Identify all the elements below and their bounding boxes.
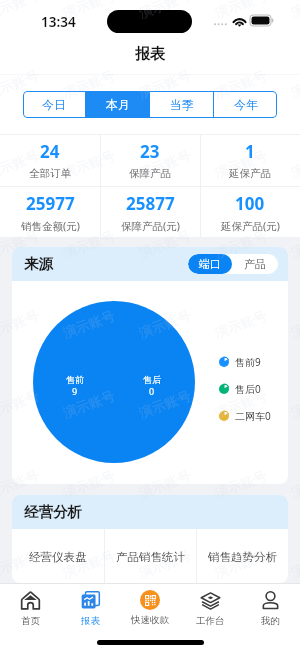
staticText: 首页 <box>21 615 40 627</box>
button[interactable]: 今日 <box>23 91 85 118</box>
staticText: 演示账号 <box>137 0 193 22</box>
staticText: 报表 <box>81 615 100 627</box>
staticText: 演示账号 <box>61 547 117 582</box>
staticText: 演示账号 <box>213 147 269 182</box>
staticText: 今年 <box>234 97 258 112</box>
staticText: 报表 <box>135 45 165 64</box>
staticText: 延保产品(元) <box>221 219 280 233</box>
staticText: 演示账号 <box>137 67 193 102</box>
button[interactable]: 24 <box>0 134 100 186</box>
button[interactable]: 销售趋势分析 <box>197 529 288 583</box>
staticText: 售前 <box>66 374 84 385</box>
staticText: 演示账号 <box>137 227 193 262</box>
staticText: 本月 <box>106 97 130 112</box>
button[interactable]: Reports <box>60 584 120 627</box>
staticText: 演示账号 <box>137 627 193 652</box>
staticText: 端口 <box>199 257 221 271</box>
staticText: 演示账号 <box>61 387 117 422</box>
staticText: 今日 <box>42 97 66 112</box>
staticText: 演示账号 <box>213 547 269 582</box>
button[interactable]: 产品销售统计 <box>105 529 196 583</box>
staticText: 我的 <box>261 615 280 627</box>
staticText: 当季 <box>170 97 194 112</box>
staticText: 保障产品(元) <box>121 219 180 233</box>
button[interactable]: 本月 <box>86 91 149 118</box>
staticText: 销售金额(元) <box>21 219 80 233</box>
staticText: 来源 <box>24 255 53 273</box>
staticText: 演示账号 <box>61 147 117 182</box>
staticText: 演示账号 <box>137 547 193 582</box>
staticText: 销售趋势分析 <box>208 550 277 564</box>
staticText: 0 <box>149 385 155 397</box>
staticText: 演示账号 <box>0 227 41 262</box>
staticText: 100 <box>235 192 265 215</box>
staticText: 演示账号 <box>0 307 41 342</box>
staticText: 演示账号 <box>61 627 117 652</box>
staticText: 演示账号 <box>61 467 117 502</box>
staticText: 售前9 <box>235 355 261 369</box>
staticText: 13:34 <box>41 13 76 31</box>
button[interactable]: 100 <box>200 186 300 238</box>
staticText: 售后 <box>143 374 161 385</box>
button[interactable]: 1 <box>200 134 300 186</box>
button[interactable]: 经营仪表盘 <box>12 529 104 583</box>
staticText: 演示账号 <box>137 147 193 182</box>
staticText: 演示账号 <box>0 147 41 182</box>
staticText: 演示账号 <box>289 227 300 262</box>
button[interactable]: 25877 <box>100 186 200 238</box>
staticText: 演示账号 <box>137 387 193 422</box>
button[interactable]: Workbench <box>180 584 240 627</box>
button[interactable]: 23 <box>100 134 200 186</box>
staticText: 演示账号 <box>61 227 117 262</box>
staticText: 演示账号 <box>213 227 269 262</box>
staticText: 经营分析 <box>24 503 82 521</box>
staticText: 23 <box>140 140 160 163</box>
button[interactable]: Quick payment <box>120 584 180 627</box>
staticText: 25977 <box>26 192 75 215</box>
staticText: 全部订单 <box>29 167 71 180</box>
staticText: 演示账号 <box>0 547 41 582</box>
staticText: 延保产品 <box>229 167 271 180</box>
staticText: 演示账号 <box>213 67 269 102</box>
staticText: 经营仪表盘 <box>29 550 87 564</box>
staticText: 25877 <box>126 192 175 215</box>
staticText: 演示账号 <box>0 387 41 422</box>
staticText: 演示账号 <box>213 0 269 22</box>
button[interactable]: 25977 <box>0 186 100 238</box>
staticText: 演示账号 <box>0 467 41 502</box>
button[interactable]: Mine <box>240 584 300 627</box>
button[interactable]: 端口 <box>188 254 232 274</box>
button[interactable]: 今年 <box>214 91 277 118</box>
staticText: 保障产品 <box>129 167 171 180</box>
staticText: 24 <box>40 140 60 163</box>
staticText: 售后0 <box>235 382 261 396</box>
button[interactable]: 产品 <box>232 254 278 274</box>
staticText: 1 <box>245 140 255 163</box>
staticText: 快速收款 <box>131 614 169 626</box>
staticText: 演示账号 <box>213 387 269 422</box>
staticText: 演示账号 <box>61 0 117 22</box>
staticText: 演示账号 <box>61 67 117 102</box>
staticText: 9 <box>72 385 78 397</box>
staticText: 产品 <box>244 257 266 271</box>
staticText: 演示账号 <box>0 67 41 102</box>
staticText: 演示账号 <box>137 307 193 342</box>
button[interactable]: Home <box>0 584 60 627</box>
staticText: 演示账号 <box>61 307 117 342</box>
staticText: 二网车0 <box>235 409 271 423</box>
button[interactable]: 当季 <box>150 91 213 118</box>
staticText: 演示账号 <box>213 467 269 502</box>
staticText: 演示账号 <box>137 467 193 502</box>
